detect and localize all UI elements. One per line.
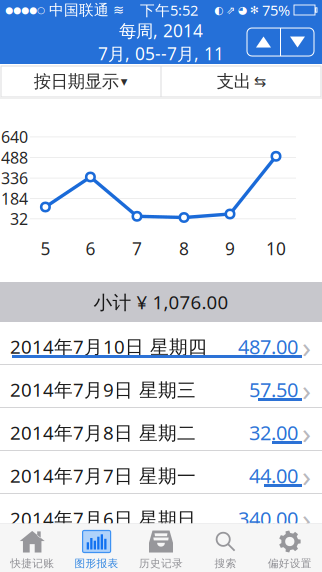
button[interactable]: 2014年7月8日 星期二: [0, 408, 322, 451]
staticText: 5: [40, 237, 50, 260]
staticText: ▾: [121, 74, 128, 89]
staticText: 32: [10, 208, 28, 229]
button[interactable]: 图形报表: [64, 523, 129, 572]
staticText: 6: [85, 237, 95, 260]
staticText: 2014年7月7日 星期一: [10, 463, 196, 488]
button[interactable]: Next period: [281, 28, 314, 56]
staticText: 10: [266, 237, 286, 260]
staticText: ›: [302, 370, 311, 409]
staticText: 8: [179, 237, 189, 260]
staticText: 偏好设置: [268, 557, 312, 570]
staticText: ●●●●: [5, 5, 37, 15]
staticText: 336: [1, 167, 28, 189]
staticText: 历史记录: [139, 557, 183, 570]
staticText: 支出: [217, 71, 251, 92]
staticText: ›: [302, 456, 311, 495]
staticText: 487.00: [238, 333, 298, 360]
staticText: 340.00: [238, 505, 298, 532]
staticText: 488: [1, 147, 28, 168]
button[interactable]: Previous period: [247, 28, 280, 56]
staticText: 快捷记账: [10, 557, 54, 570]
button[interactable]: 2014年7月10日 星期四: [0, 322, 322, 365]
button[interactable]: 历史记录: [129, 523, 193, 572]
staticText: 2014年7月10日 星期四: [10, 334, 207, 359]
staticText: 640: [1, 126, 28, 147]
staticText: 7: [132, 237, 142, 260]
button[interactable]: 2014年7月7日 星期一: [0, 451, 322, 494]
staticText: 9: [225, 237, 235, 260]
staticText: 7月, 05--7月, 11: [98, 42, 224, 65]
staticText: 下午5:52: [140, 0, 198, 20]
staticText: 图形报表: [75, 557, 119, 570]
staticText: 每周, 2014: [119, 19, 203, 42]
staticText: ○: [37, 5, 45, 15]
staticText: ≋: [113, 2, 124, 17]
button[interactable]: 2014年7月6日 星期日: [0, 494, 322, 537]
button[interactable]: 2014年7月9日 星期三: [0, 365, 322, 408]
staticText: 2014年7月9日 星期三: [10, 377, 196, 402]
staticText: ›: [302, 413, 311, 452]
staticText: 搜索: [214, 557, 236, 570]
button[interactable]: 按日期显示: [1, 66, 160, 97]
staticText: 小计 ¥ 1,076.00: [93, 290, 228, 314]
staticText: 184: [1, 188, 28, 209]
staticText: 中国联通: [45, 1, 113, 19]
button[interactable]: 搜索: [193, 523, 258, 572]
staticText: 75%: [262, 0, 294, 20]
staticText: ◐ ⇗ ◕ ✻: [214, 4, 262, 16]
staticText: ⇆: [254, 73, 266, 90]
staticText: 按日期显示: [34, 71, 119, 92]
button[interactable]: 支出: [161, 66, 321, 97]
staticText: 32.00: [249, 419, 298, 446]
staticText: ›: [302, 499, 311, 538]
staticText: 2014年7月8日 星期二: [10, 420, 196, 445]
staticText: 44.00: [249, 462, 298, 489]
staticText: ›: [302, 327, 311, 366]
staticText: 57.50: [249, 376, 298, 403]
button[interactable]: 快捷记账: [0, 523, 64, 572]
button[interactable]: 偏好设置: [258, 523, 322, 572]
staticText: 2014年7月6日 星期日: [10, 506, 196, 531]
